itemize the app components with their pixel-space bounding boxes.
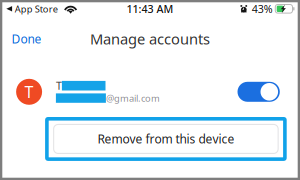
- staticText: 43%: [252, 2, 273, 16]
- staticText: Remove from this device: [97, 131, 234, 147]
- staticText: 11:43 AM: [126, 2, 173, 16]
- staticText: @gmail.com: [106, 92, 160, 104]
- staticText: Done: [12, 31, 42, 47]
- staticText: T: [25, 81, 34, 102]
- staticText: Manage accounts: [90, 29, 210, 49]
- staticText: T: [56, 79, 62, 93]
- button[interactable]: Done: [7, 24, 47, 54]
- button[interactable]: Account enabled: [237, 82, 280, 102]
- button[interactable]: Remove from this device: [54, 124, 278, 153]
- staticText: App Store: [15, 3, 58, 15]
